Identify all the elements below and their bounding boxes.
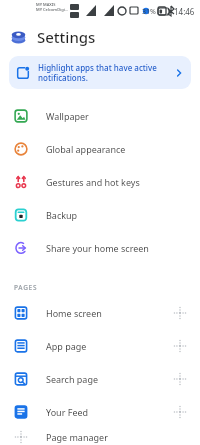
button[interactable]: Highlight apps that have active notifica…: [9, 56, 191, 89]
staticText: Search page: [46, 373, 172, 385]
staticText: Gestures and hot keys: [46, 176, 140, 188]
staticText: Share your home screen: [46, 242, 149, 254]
staticText: MY CelcomDigi…: [36, 7, 68, 12]
staticText: App page: [46, 340, 172, 352]
button[interactable]: Backup: [0, 198, 200, 231]
button[interactable]: Reorder Search page: [172, 371, 188, 387]
button[interactable]: Page manager: [0, 428, 200, 445]
button[interactable]: Gestures and hot keys: [0, 165, 200, 198]
button[interactable]: Home screen: [0, 296, 200, 329]
button[interactable]: Reorder Your Feed: [172, 404, 188, 420]
staticText: MY MAXIS: [36, 2, 56, 7]
button[interactable]: Wallpaper: [0, 99, 200, 132]
staticText: Global appearance: [46, 143, 126, 155]
button[interactable]: Global appearance: [0, 132, 200, 165]
button[interactable]: Your Feed: [0, 395, 200, 428]
staticText: 31%: [142, 7, 156, 17]
staticText: Page manager: [46, 431, 188, 443]
staticText: Wallpaper: [46, 110, 89, 122]
staticText: Backup: [46, 209, 78, 221]
button[interactable]: Share your home screen: [0, 231, 200, 264]
button[interactable]: App page: [0, 329, 200, 362]
staticText: Settings: [37, 27, 96, 47]
staticText: Your Feed: [46, 406, 172, 418]
staticText: Highlight apps that have active notifica…: [38, 62, 170, 83]
staticText: Home screen: [46, 307, 172, 319]
button[interactable]: Reorder App page: [172, 338, 188, 354]
button[interactable]: Search page: [0, 362, 200, 395]
staticText: 14:46: [174, 6, 195, 17]
staticText: PAGES: [14, 283, 38, 292]
button[interactable]: Reorder Home screen: [172, 305, 188, 321]
